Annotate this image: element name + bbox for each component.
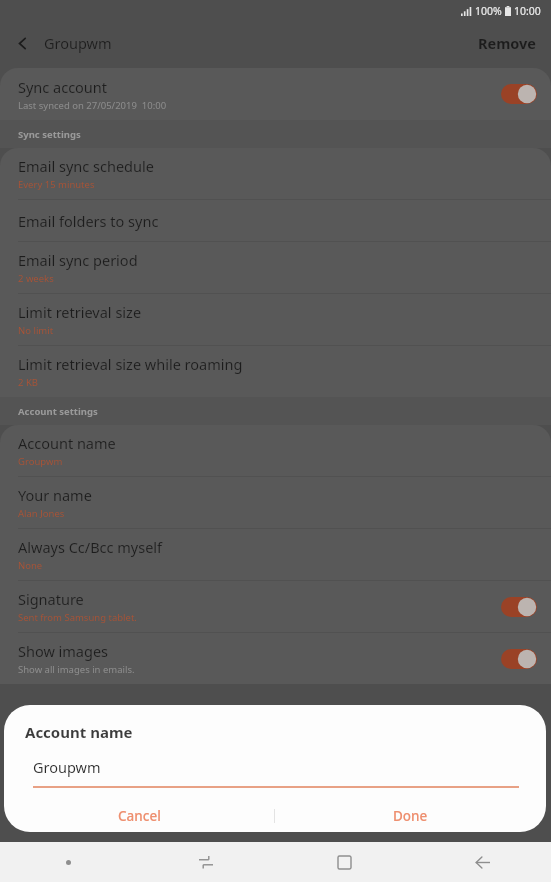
staticText: 10:00 xyxy=(514,4,541,18)
staticText: Done xyxy=(393,807,428,825)
staticText: Groupwm xyxy=(18,455,63,468)
staticText: Signature xyxy=(18,589,84,609)
button[interactable]: Back xyxy=(413,842,551,882)
button[interactable]: Account name xyxy=(0,425,551,476)
staticText: Limit retrieval size while roaming xyxy=(18,354,243,374)
staticText: Sync settings xyxy=(18,128,81,141)
staticText: Remove xyxy=(478,33,537,53)
staticText: Email sync period xyxy=(18,250,138,270)
button[interactable]: Email folders to sync xyxy=(0,200,551,241)
staticText: 100% xyxy=(475,4,502,18)
button[interactable]: Toggle Signature xyxy=(501,597,537,617)
staticText: Email folders to sync xyxy=(18,211,159,231)
staticText: 2 KB xyxy=(18,376,38,389)
button[interactable]: Home xyxy=(275,842,413,882)
button[interactable]: Email sync schedule xyxy=(0,148,551,199)
staticText: Last synced on 27/05/2019 10:00 xyxy=(18,99,167,112)
staticText: Your name xyxy=(18,485,92,505)
button[interactable]: Limit retrieval size xyxy=(0,294,551,345)
staticText: Sent from Samsung tablet. xyxy=(18,611,137,624)
staticText: Alan Jones xyxy=(18,507,65,520)
staticText: Show images xyxy=(18,641,109,661)
staticText: Cancel xyxy=(118,807,161,825)
button[interactable]: Signature xyxy=(0,581,551,632)
button[interactable]: Your name xyxy=(0,477,551,528)
staticText: Account name xyxy=(18,433,116,453)
button[interactable]: Cancel xyxy=(4,801,274,831)
button[interactable]: Done xyxy=(275,801,546,831)
staticText: Account name xyxy=(25,722,133,742)
staticText: Every 15 minutes xyxy=(18,178,95,191)
staticText: Account settings xyxy=(18,405,98,418)
button[interactable]: Toggle Show images xyxy=(501,649,537,669)
button[interactable]: Back xyxy=(0,22,44,64)
staticText: Email sync schedule xyxy=(18,156,154,176)
button[interactable]: Recents xyxy=(137,842,275,882)
staticText: Groupwm xyxy=(33,757,101,777)
button[interactable]: Sync account xyxy=(0,68,551,120)
staticText: No limit xyxy=(18,324,54,337)
staticText: 2 weeks xyxy=(18,272,54,285)
button[interactable]: Always Cc/Bcc myself xyxy=(0,529,551,580)
staticText: Show all images in emails. xyxy=(18,663,135,676)
button[interactable]: Email sync period xyxy=(0,242,551,293)
staticText: None xyxy=(18,559,43,572)
staticText: Limit retrieval size xyxy=(18,302,142,322)
staticText: Sync account xyxy=(18,77,108,97)
button[interactable]: Remove xyxy=(464,22,551,64)
button[interactable]: Hide keyboard xyxy=(0,842,137,882)
button[interactable]: Show images xyxy=(0,633,551,684)
button[interactable]: Limit retrieval size while roaming xyxy=(0,346,551,397)
staticText: Groupwm xyxy=(44,33,112,53)
staticText: Always Cc/Bcc myself xyxy=(18,537,163,557)
button[interactable]: Toggle Sync account xyxy=(501,84,537,104)
